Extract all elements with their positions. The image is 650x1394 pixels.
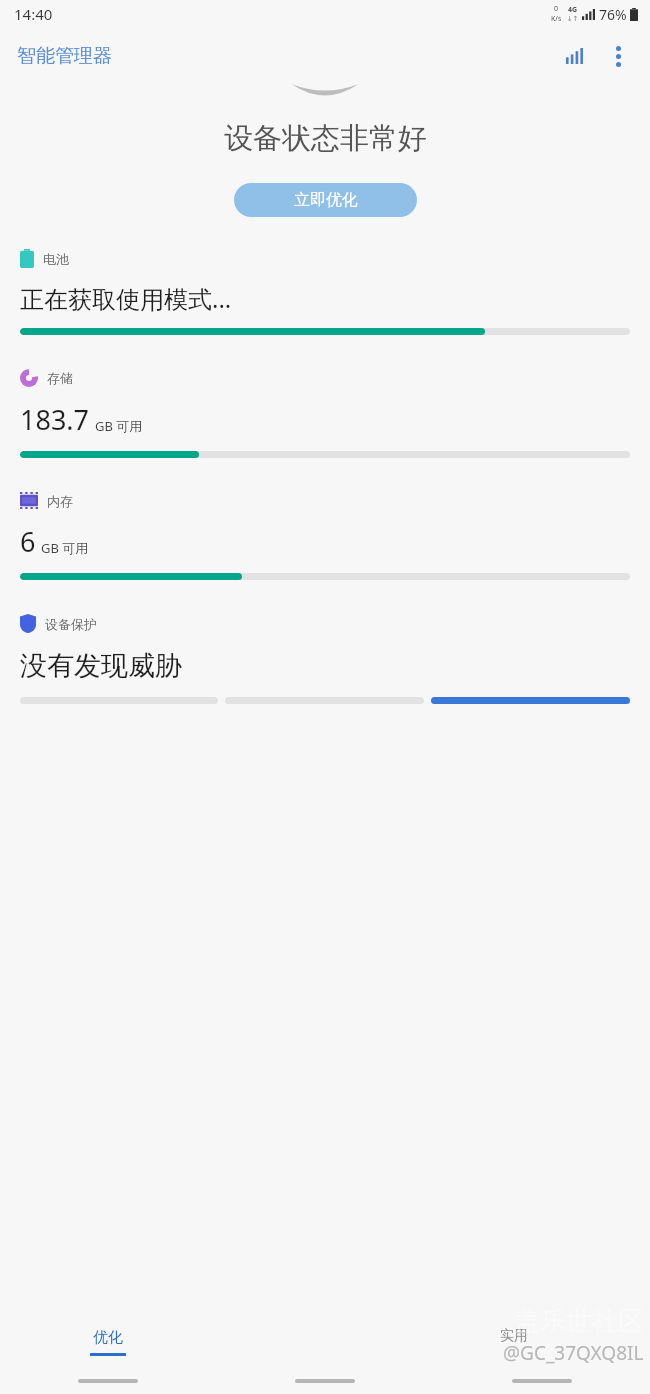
staticText: 实用 xyxy=(500,1327,528,1345)
button[interactable]: Usage statistics xyxy=(552,34,596,78)
staticText: 立即优化 xyxy=(294,190,358,210)
staticText: 没有发现威胁 xyxy=(20,649,182,683)
button[interactable]: 优化 xyxy=(0,1316,216,1368)
button[interactable]: 立即优化 xyxy=(234,183,417,217)
staticText: 76% xyxy=(599,5,627,24)
button[interactable]: 电池 xyxy=(0,249,650,335)
button[interactable]: More options xyxy=(596,34,640,78)
staticText: 0 xyxy=(554,4,559,14)
staticText: 6 xyxy=(20,523,36,560)
staticText: 电池 xyxy=(43,251,69,267)
staticText: 智能管理器 xyxy=(17,44,112,68)
staticText: 设备状态非常好 xyxy=(224,120,427,157)
staticText: 盖乐世社区 xyxy=(514,1305,644,1338)
staticText: ↓↑ xyxy=(567,15,579,23)
staticText: GB 可用 xyxy=(41,539,89,557)
staticText: @GC_37QXQ8IL xyxy=(503,1340,644,1366)
button[interactable]: 实用 xyxy=(433,1316,650,1368)
staticText: 4G xyxy=(568,5,578,15)
staticText: 存储 xyxy=(47,370,73,386)
staticText: K/s xyxy=(551,14,562,24)
button[interactable]: 内存 xyxy=(0,492,650,580)
staticText: 183.7 xyxy=(20,401,90,438)
staticText: 正在获取使用模式... xyxy=(20,282,232,315)
staticText: 14:40 xyxy=(14,4,53,24)
staticText: 内存 xyxy=(47,493,73,509)
button[interactable]: 设备保护 xyxy=(0,614,650,704)
staticText: 优化 xyxy=(93,1328,123,1347)
button[interactable]: 存储 xyxy=(0,369,650,458)
staticText: GB 可用 xyxy=(95,417,143,435)
staticText: 设备保护 xyxy=(45,616,97,632)
